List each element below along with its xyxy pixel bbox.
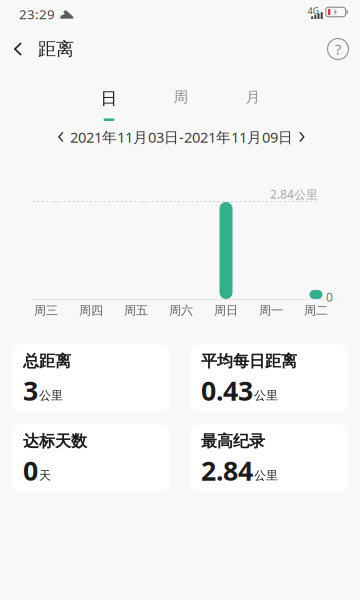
- button[interactable]: 周: [158, 85, 203, 123]
- button[interactable]: 距离: [0, 26, 84, 72]
- staticText: 平均每日距离: [201, 351, 297, 371]
- staticText: 0: [23, 452, 38, 488]
- button[interactable]: 最高纪录: [190, 424, 348, 492]
- staticText: 周二: [304, 303, 328, 318]
- staticText: 公里: [39, 388, 63, 403]
- staticText: 周: [173, 88, 188, 106]
- button[interactable]: 月: [230, 85, 275, 123]
- staticText: 距离: [38, 38, 74, 60]
- button[interactable]: 平均每日距离: [190, 344, 348, 412]
- staticText: 天: [39, 468, 51, 483]
- button[interactable]: 上一周: [53, 126, 69, 147]
- button[interactable]: 达标天数: [12, 424, 170, 492]
- staticText: ?: [335, 39, 341, 59]
- staticText: 0: [326, 289, 333, 305]
- button[interactable]: 帮助: [317, 26, 359, 72]
- staticText: 0.43: [201, 372, 253, 408]
- staticText: 日: [100, 88, 117, 109]
- staticText: 3: [23, 372, 38, 408]
- staticText: 最高纪录: [201, 431, 265, 451]
- staticText: 达标天数: [23, 431, 87, 451]
- button[interactable]: 下一周: [294, 126, 310, 147]
- staticText: 周日: [214, 303, 238, 318]
- button[interactable]: 日: [86, 85, 131, 123]
- staticText: 周三: [34, 303, 58, 318]
- staticText: 总距离: [23, 351, 71, 371]
- staticText: 2.84公里: [270, 186, 318, 202]
- staticText: 公里: [254, 468, 278, 483]
- staticText: 月: [245, 88, 260, 106]
- staticText: 2021年11月03日-2021年11月09日: [70, 127, 293, 147]
- staticText: 周五: [124, 303, 148, 318]
- staticText: 周一: [259, 303, 283, 318]
- staticText: 4G: [308, 5, 319, 17]
- staticText: 周四: [79, 303, 103, 318]
- staticText: 周六: [169, 303, 193, 318]
- staticText: 23:29: [19, 5, 55, 23]
- button[interactable]: 总距离: [12, 344, 170, 412]
- staticText: 2.84: [201, 452, 253, 488]
- staticText: 公里: [254, 388, 278, 403]
